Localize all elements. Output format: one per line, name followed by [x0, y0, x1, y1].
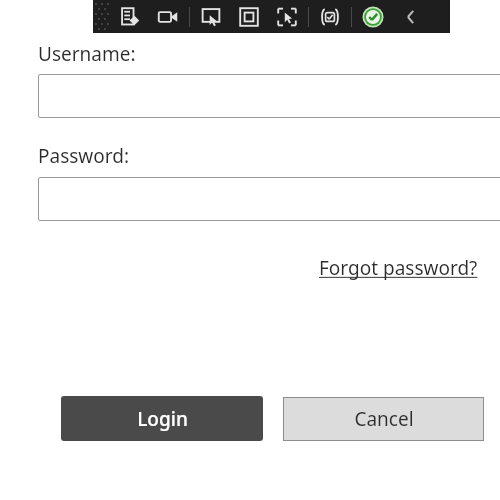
staticText: Login: [137, 406, 188, 432]
button[interactable]: Accessibility check: [311, 0, 349, 33]
staticText: Password:: [38, 143, 130, 169]
staticText: Username:: [38, 41, 136, 67]
button[interactable]: Select element: [192, 0, 230, 33]
button[interactable]: Cancel: [283, 397, 484, 441]
button[interactable]: Record video: [149, 0, 187, 33]
button[interactable]: Validate: [354, 0, 392, 33]
staticText: Forgot password?: [319, 255, 478, 281]
button[interactable]: Inspect layout: [111, 0, 149, 33]
button[interactable]: Login: [61, 396, 263, 441]
button[interactable]: Select area: [230, 0, 268, 33]
staticText: Cancel: [354, 406, 414, 432]
button[interactable]: Select region: [268, 0, 306, 33]
button[interactable]: [38, 177, 500, 221]
button[interactable]: Collapse toolbar: [392, 0, 430, 33]
button[interactable]: Forgot password?: [319, 254, 478, 281]
button[interactable]: [38, 74, 500, 118]
